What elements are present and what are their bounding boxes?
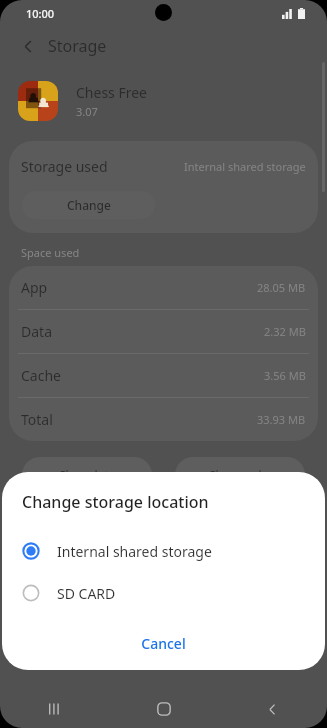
button[interactable]: Recent apps [0,690,109,728]
staticText: Change storage location [22,491,209,513]
staticText: Cache [21,366,61,385]
staticText: SD CARD [57,584,116,603]
staticText: Internal shared storage [57,542,212,561]
button[interactable]: SD CARD [2,572,325,614]
staticText: Total [21,410,53,429]
button[interactable]: Internal shared storage [2,530,325,572]
button[interactable]: Total [9,398,318,441]
button[interactable]: Clear cache [175,457,305,493]
staticText: Chess Free [76,83,148,102]
staticText: 2.32 MB [264,324,306,339]
staticText: 33.93 MB [257,412,306,427]
button[interactable]: Data [9,310,318,353]
staticText: Cancel [141,634,186,653]
button[interactable]: Back [218,690,327,728]
staticText: Storage used [21,157,108,176]
staticText: Clear data [58,467,116,483]
staticText: 28.05 MB [257,280,306,295]
button[interactable]: Cache [9,354,318,397]
staticText: 3.56 MB [264,368,306,383]
staticText: Clear cache [208,467,273,483]
button[interactable]: Storage used [9,141,318,191]
staticText: App [21,278,48,297]
staticText: Space used [21,245,80,260]
staticText: 3.07 [76,104,98,119]
staticText: Data [21,322,52,341]
staticText: Storage [48,35,107,57]
button[interactable]: Change [22,191,155,219]
button[interactable]: Navigate up [12,30,44,62]
button[interactable]: Clear data [22,457,152,493]
button[interactable]: Cancel [2,625,325,661]
staticText: 10:00 [26,6,55,21]
staticText: Change [67,197,111,213]
staticText: Internal shared storage [184,159,306,174]
button[interactable]: Home [109,690,218,728]
button[interactable]: App [9,266,318,309]
